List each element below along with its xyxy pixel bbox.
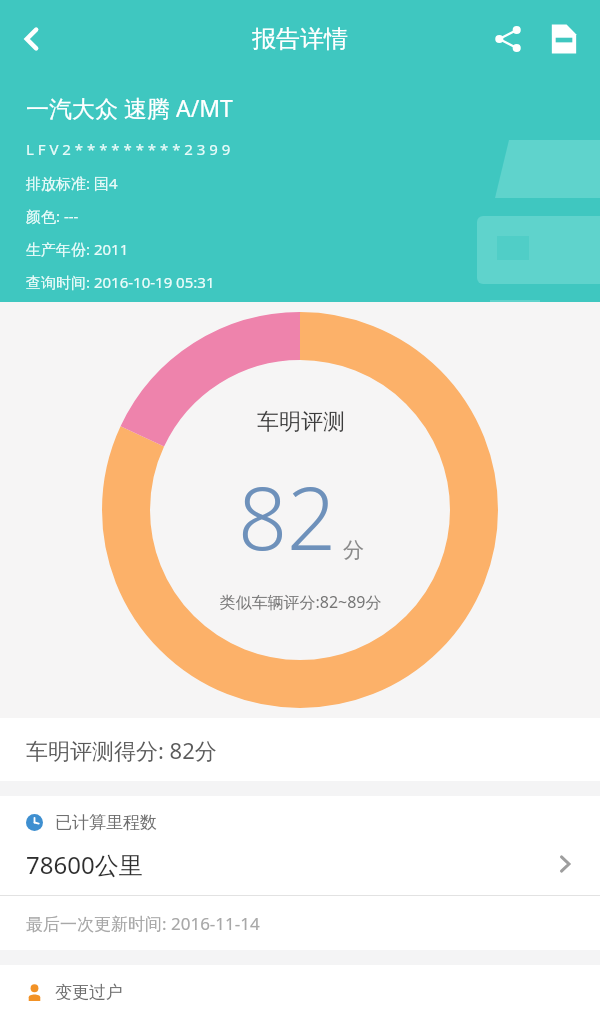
staticText: 颜色: --- bbox=[26, 206, 79, 226]
staticText: L F V 2 * * * * * * * * * 2 3 9 9 bbox=[26, 139, 231, 159]
staticText: 一汽大众 速腾 A/MT bbox=[26, 92, 233, 123]
staticText: 分 bbox=[343, 537, 364, 563]
button[interactable]: Back bbox=[0, 7, 64, 71]
button[interactable]: Share bbox=[480, 11, 536, 67]
button[interactable]: 车明评测得分: 82分 bbox=[0, 718, 600, 781]
staticText: 类似车辆评分:82~89分 bbox=[219, 591, 382, 613]
staticText: 车明评测 bbox=[257, 408, 345, 436]
staticText: 查询时间: 2016-10-19 05:31 bbox=[26, 272, 215, 292]
staticText: 82 bbox=[238, 458, 337, 575]
staticText: 生产年份: 2011 bbox=[26, 239, 129, 259]
staticText: 78600公里 bbox=[26, 848, 143, 881]
staticText: 排放标准: 国4 bbox=[26, 173, 118, 193]
button[interactable]: 变更过户 bbox=[0, 965, 600, 1019]
staticText: 车明评测得分: 82分 bbox=[26, 735, 217, 765]
button[interactable]: Export PDF bbox=[536, 11, 592, 67]
staticText: 已计算里程数 bbox=[55, 812, 157, 833]
button[interactable]: 78600公里 bbox=[0, 833, 600, 895]
staticText: 变更过户 bbox=[55, 982, 123, 1003]
staticText: 最后一次更新时间: 2016-11-14 bbox=[26, 912, 260, 935]
staticText: 报告详情 bbox=[252, 24, 348, 54]
